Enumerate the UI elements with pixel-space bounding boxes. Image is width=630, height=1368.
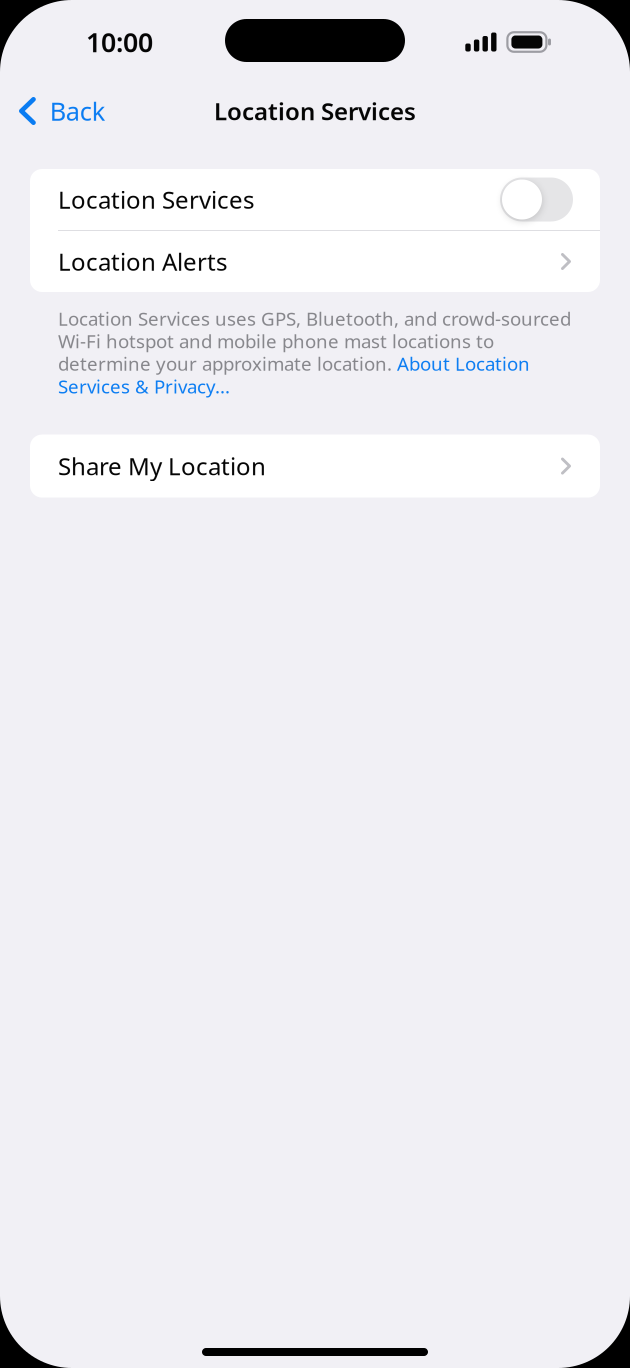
button[interactable]: Share My Location — [30, 435, 600, 498]
button[interactable]: Location Alerts — [30, 231, 600, 292]
staticText: Location Services — [214, 95, 416, 127]
button[interactable]: Location Services — [500, 177, 573, 221]
staticText: Location Services — [58, 184, 254, 215]
staticText: Location Alerts — [58, 246, 227, 277]
button[interactable]: Back — [0, 84, 122, 138]
staticText: Location Services uses GPS, Bluetooth, a… — [58, 306, 571, 399]
button[interactable]: About Location Services & Privacy — [58, 306, 572, 399]
staticText: Share My Location — [58, 450, 266, 482]
button[interactable]: Location Services — [30, 169, 600, 230]
staticText: Back — [50, 94, 106, 128]
staticText: 10:00 — [86, 24, 153, 60]
